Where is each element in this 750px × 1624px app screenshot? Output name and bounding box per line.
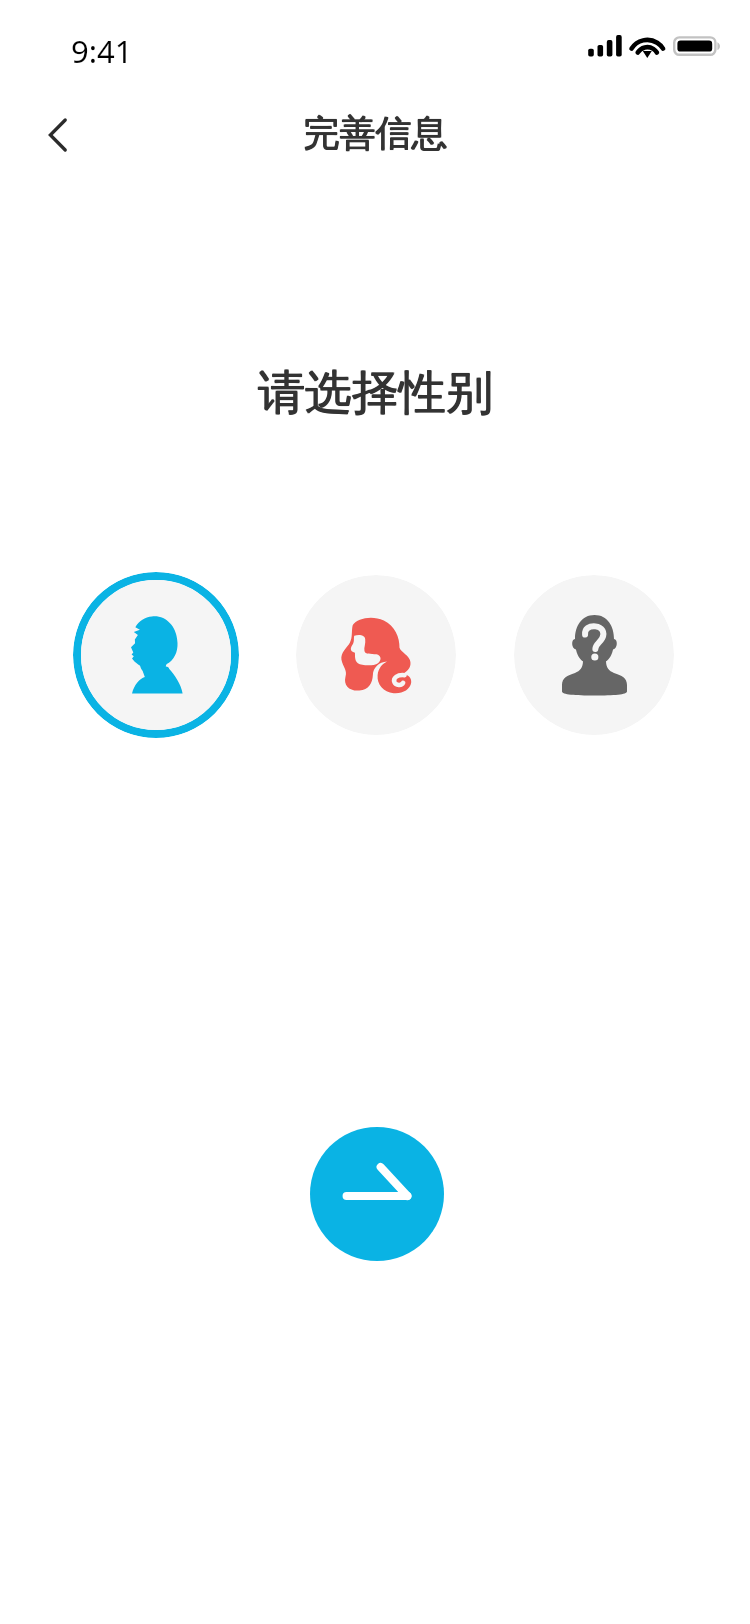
staticText: 完善信息 [0, 111, 750, 156]
button[interactable]: Female [296, 575, 456, 735]
button[interactable]: Prefer not to say [514, 575, 674, 735]
staticText: 完善信息 [1, 111, 750, 156]
button[interactable]: Next [310, 1127, 444, 1261]
staticText: 请选择性别 [0, 363, 750, 422]
staticText: 请选择性别 [1, 363, 750, 422]
staticText: 完善信息 [0, 110, 750, 155]
button[interactable]: Male, selected [73, 572, 239, 738]
staticText: 请选择性别 [0, 364, 750, 423]
staticText: 完善信息 [1, 110, 750, 155]
staticText: 9:41 [71, 30, 133, 72]
staticText: 请选择性别 [1, 364, 750, 423]
button[interactable]: Back [24, 104, 86, 166]
